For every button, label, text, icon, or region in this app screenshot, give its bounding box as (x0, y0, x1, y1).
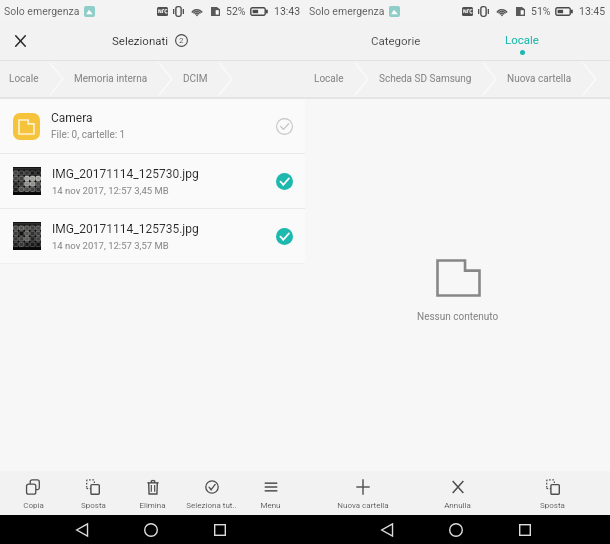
staticText: 52% (226, 5, 246, 17)
button[interactable]: App recenti (503, 515, 547, 544)
button[interactable]: Locale (459, 21, 585, 60)
button[interactable]: DCIM (183, 61, 208, 97)
staticText: IMG_20171114_125730.jpg (52, 167, 199, 181)
button[interactable]: Home (129, 515, 173, 544)
staticText: 2 (179, 36, 184, 45)
staticText: Nuova cartella (337, 501, 389, 510)
staticText: Seleziona tut.. (186, 501, 237, 510)
staticText: Copia (23, 501, 44, 510)
button[interactable]: Indietro (365, 515, 409, 544)
button[interactable]: Nuova cartella (507, 61, 572, 97)
button[interactable]: Seleziona Camera (276, 118, 293, 135)
button[interactable]: Locale (9, 61, 39, 97)
button[interactable]: IMG_20171114_125735.jpg (0, 209, 305, 263)
staticText: Nuova cartella (507, 73, 572, 85)
button[interactable]: Annulla (410, 471, 505, 515)
button[interactable]: Home (434, 515, 478, 544)
button[interactable]: Scheda SD Samsung (379, 61, 472, 97)
staticText: Elimina (139, 501, 166, 510)
staticText: Menu (260, 501, 281, 510)
staticText: File: 0, cartelle: 1 (51, 129, 126, 141)
button[interactable]: Seleziona tut.. (182, 471, 241, 515)
staticText: 51% (531, 5, 551, 17)
staticText: 14 nov 2017, 12:57 3,45 MB (52, 185, 169, 196)
button[interactable]: Nuova cartella (316, 471, 410, 515)
button[interactable]: Camera (0, 99, 305, 153)
button[interactable]: Copia (3, 471, 63, 515)
staticText: Sposta (81, 501, 106, 510)
button[interactable]: Locale (314, 61, 344, 97)
button[interactable]: Deseleziona IMG_20171114_125735.jpg (276, 228, 293, 245)
staticText: Locale (9, 73, 39, 85)
button[interactable]: Memoria interna (74, 61, 148, 97)
staticText: Annulla (444, 501, 471, 510)
staticText: Locale (314, 73, 344, 85)
staticText: Locale (505, 33, 539, 46)
staticText: IMG_20171114_125735.jpg (52, 222, 199, 236)
button[interactable]: App recenti (198, 515, 242, 544)
staticText: Sposta (540, 501, 565, 510)
button[interactable]: IMG_20171114_125730.jpg (0, 154, 305, 208)
staticText: Scheda SD Samsung (379, 73, 472, 85)
staticText: 13:43 (274, 5, 301, 17)
staticText: Solo emergenza (309, 5, 385, 17)
button[interactable]: Elimina (123, 471, 182, 515)
button[interactable]: Chiudi (4, 25, 36, 57)
staticText: 14 nov 2017, 12:57 3,57 MB (52, 240, 169, 251)
button[interactable]: Categorie (333, 21, 459, 60)
staticText: Nessun contenuto (417, 311, 499, 323)
button[interactable]: Sposta (63, 471, 123, 515)
button[interactable]: Menu (241, 471, 300, 515)
staticText: Selezionati (112, 34, 169, 47)
staticText: DCIM (183, 73, 208, 85)
staticText: Categorie (371, 34, 421, 47)
staticText: Memoria interna (74, 73, 148, 85)
button[interactable]: Indietro (60, 515, 104, 544)
button[interactable]: Sposta (505, 471, 600, 515)
staticText: Camera (51, 111, 93, 125)
staticText: 13:45 (579, 5, 606, 17)
staticText: Solo emergenza (4, 5, 80, 17)
button[interactable]: Deseleziona IMG_20171114_125730.jpg (276, 173, 293, 190)
